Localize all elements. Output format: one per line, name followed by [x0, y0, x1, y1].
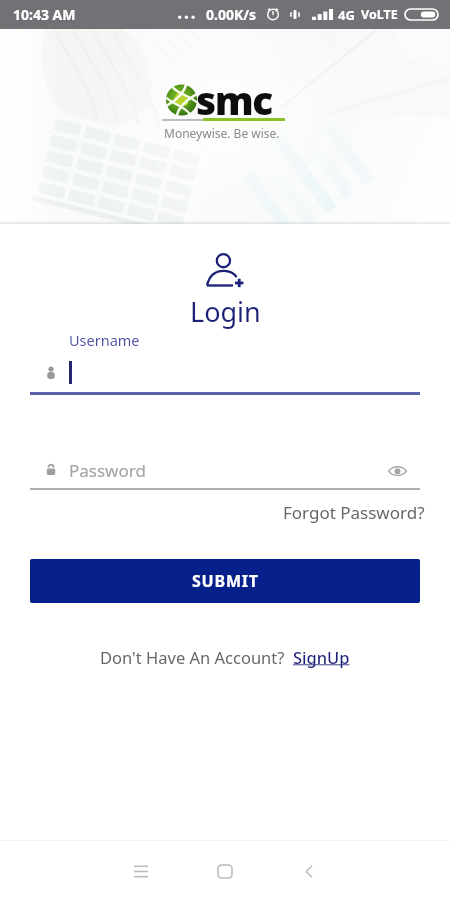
- button[interactable]: Forgot Password?: [283, 501, 425, 524]
- staticText: SUBMIT: [192, 570, 259, 592]
- staticText: VoLTE: [361, 6, 398, 23]
- button[interactable]: SignUp: [293, 646, 350, 668]
- button[interactable]: Home: [197, 843, 253, 899]
- staticText: smc: [196, 73, 272, 126]
- button[interactable]: Back: [281, 843, 337, 899]
- staticText: 4G: [338, 6, 355, 24]
- button[interactable]: Recent apps: [113, 843, 169, 899]
- staticText: Password: [69, 459, 146, 481]
- button[interactable]: Show password: [384, 459, 410, 481]
- staticText: Username: [69, 330, 140, 350]
- staticText: Don't Have An Account?: [100, 646, 285, 668]
- staticText: Login: [190, 293, 261, 330]
- button[interactable]: SUBMIT: [30, 559, 420, 603]
- staticText: 10:43 AM: [13, 5, 76, 24]
- staticText: 0.00K/s: [206, 5, 257, 24]
- staticText: Moneywise. Be wise.: [164, 125, 280, 141]
